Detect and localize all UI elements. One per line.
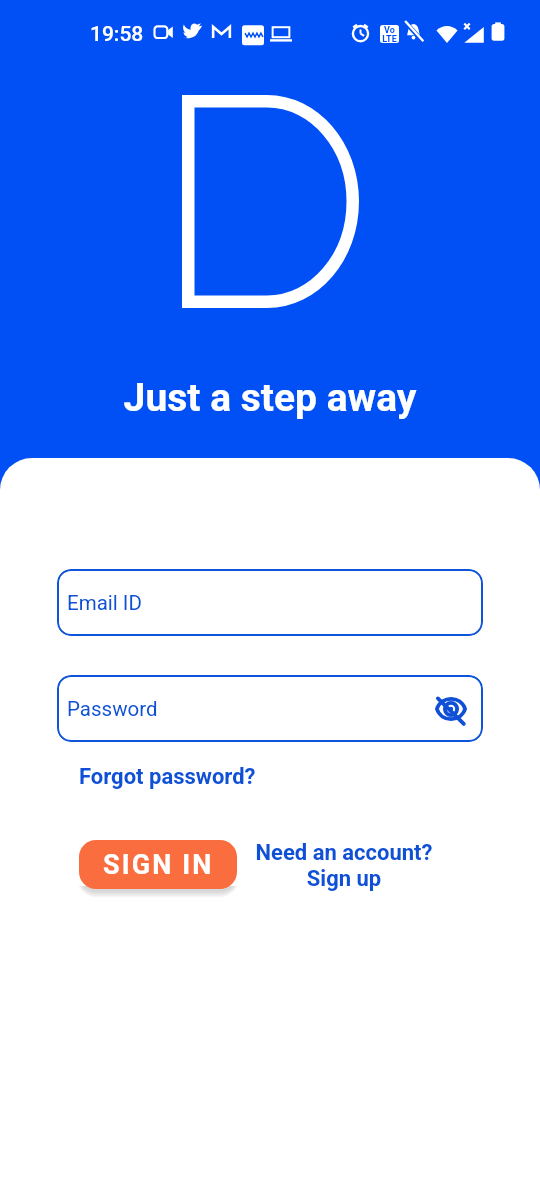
staticText: 19:58 — [90, 22, 144, 47]
button[interactable]: Need an account? Sign up — [248, 840, 440, 891]
button[interactable]: Email ID — [57, 569, 483, 636]
button[interactable]: SIGN IN — [79, 840, 237, 889]
staticText: SIGN IN — [103, 849, 214, 881]
button[interactable]: Forgot password? — [72, 760, 263, 794]
staticText: Just a step away — [0, 375, 540, 421]
staticText: Password — [67, 697, 158, 721]
button[interactable]: Password — [57, 675, 483, 742]
staticText: Email ID — [67, 591, 142, 615]
staticText: Vo LTE — [380, 25, 399, 44]
staticText: Forgot password? — [79, 764, 256, 790]
staticText: Need an account? Sign up — [248, 840, 440, 891]
button[interactable]: Show password — [431, 689, 471, 729]
